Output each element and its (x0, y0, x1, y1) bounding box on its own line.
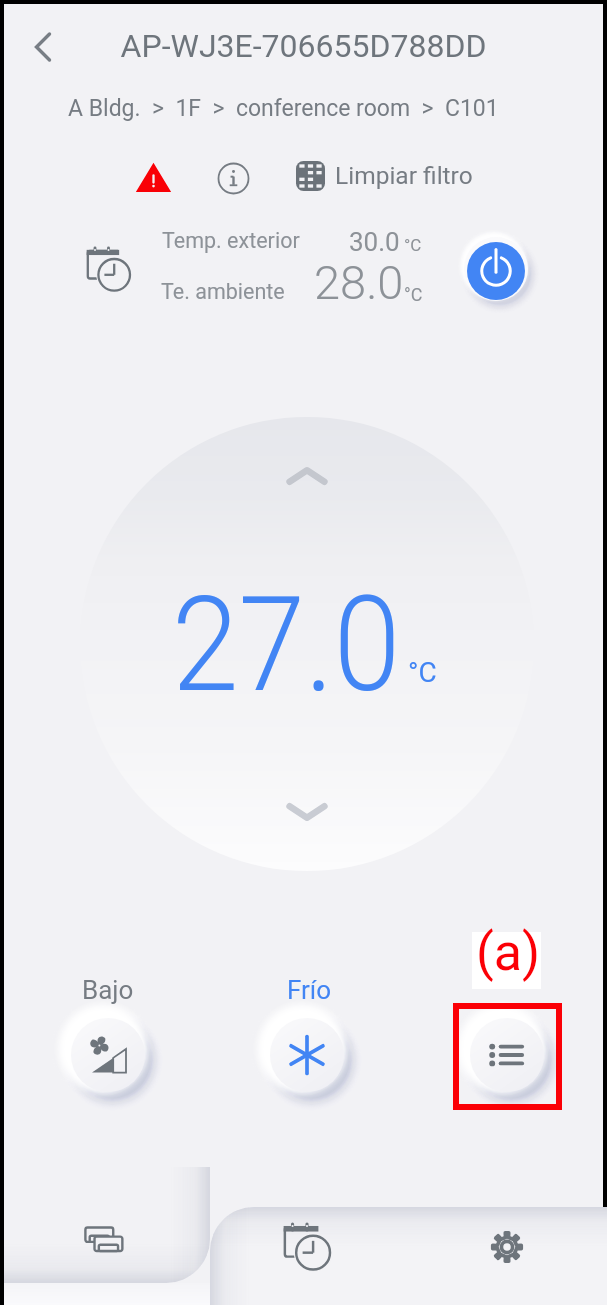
staticText: 27.0 (172, 568, 401, 722)
staticText: °C (404, 235, 422, 255)
button[interactable]: Info (217, 162, 250, 195)
button[interactable]: Unit (4, 1200, 210, 1280)
staticText: °C (408, 656, 437, 689)
staticText: Te. ambiente (161, 279, 285, 304)
staticText: AP-WJ3E-706655D788DD (4, 27, 603, 65)
button[interactable]: Fan speed (71, 1018, 145, 1092)
button[interactable]: Limpiar filtro (296, 161, 473, 191)
staticText: 30.0 (349, 227, 400, 257)
button[interactable]: Back (19, 23, 67, 71)
button[interactable]: Menu (470, 1018, 544, 1092)
button[interactable]: Power (467, 242, 525, 300)
staticText: Bajo (82, 975, 134, 1005)
staticText: °C (404, 284, 423, 305)
staticText: Frío (287, 975, 332, 1005)
staticText: 28.0 (314, 255, 404, 310)
staticText: Limpiar filtro (335, 161, 473, 190)
staticText: A Bldg. > 1F > conference room > C101 (68, 95, 499, 122)
button[interactable]: Decrease temperature (281, 786, 333, 838)
button[interactable]: Schedule (259, 1207, 355, 1287)
staticText: Temp. exterior (162, 228, 300, 253)
button[interactable]: Increase temperature (281, 450, 333, 502)
staticText: (a) (476, 922, 541, 983)
button[interactable]: Settings (459, 1207, 555, 1287)
button[interactable]: Mode (270, 1018, 344, 1092)
button[interactable]: Alert (138, 163, 169, 194)
